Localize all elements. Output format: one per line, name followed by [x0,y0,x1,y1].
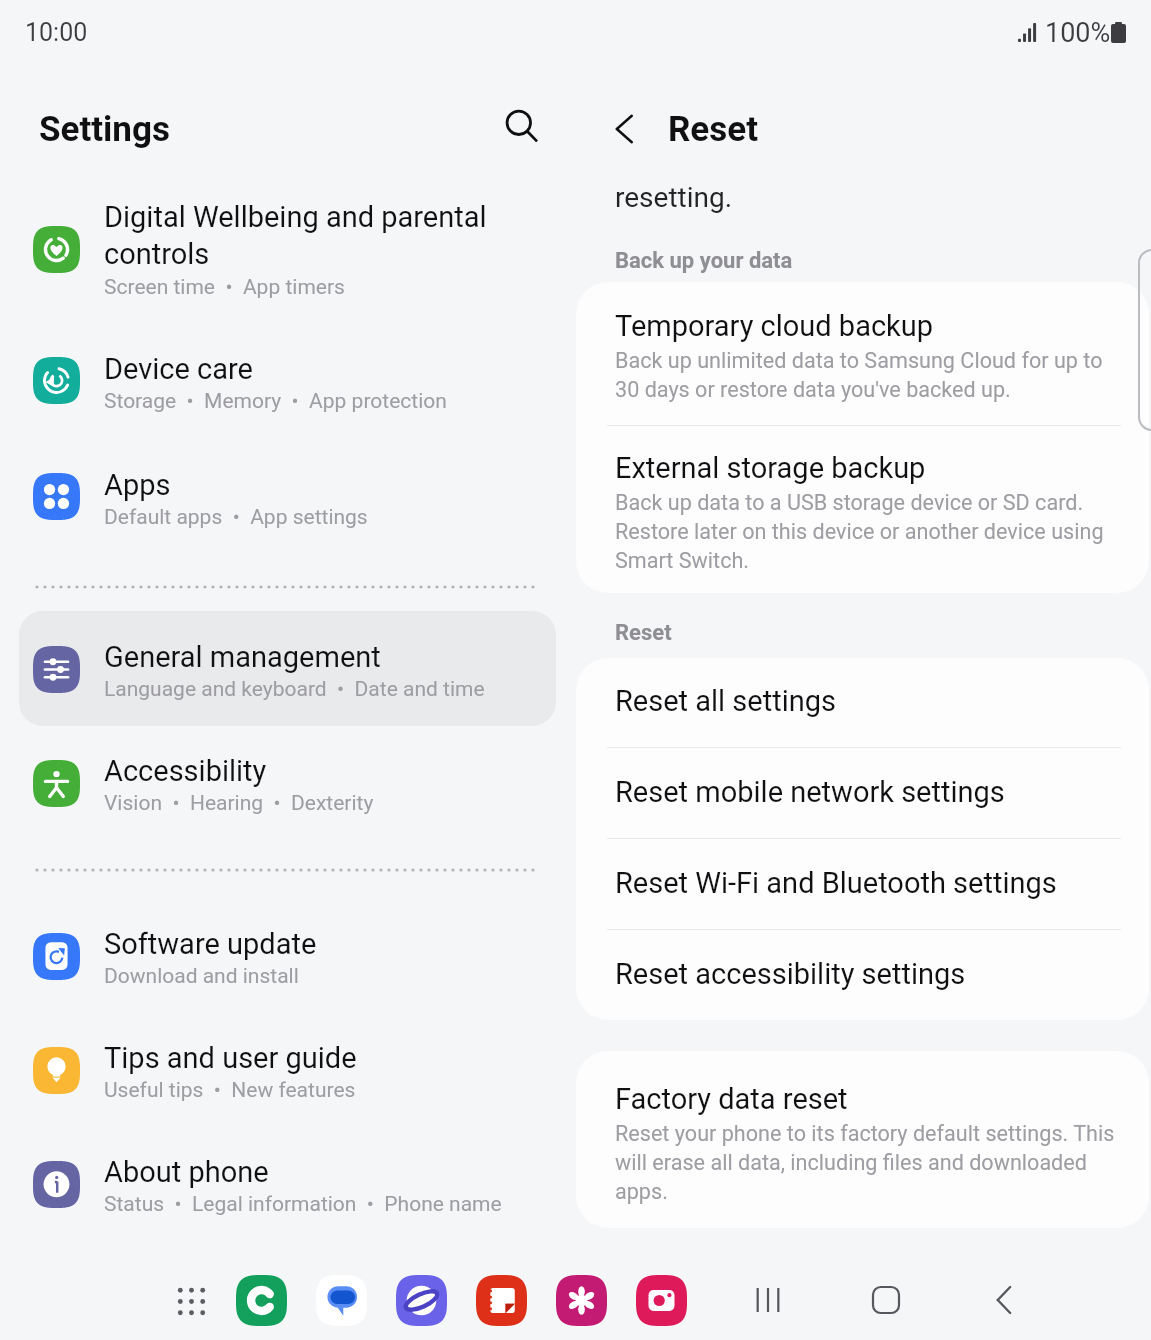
staticText: Storage • Memory • App protection [104,389,447,414]
staticText: Tips and user guide [104,1041,357,1075]
staticText: Reset [615,620,672,646]
button[interactable]: Camera [636,1275,687,1326]
button[interactable]: Digital Wellbeing and parental controls [19,192,556,326]
staticText: Language and keyboard • Date and time [104,677,485,702]
button[interactable]: Reset all settings [576,658,1149,749]
button[interactable]: Reset mobile network settings [576,749,1149,840]
button[interactable]: Recents [732,1264,804,1336]
button[interactable]: Accessibility [19,747,556,862]
button[interactable]: External storage backup [576,426,1149,593]
button[interactable]: Device care [19,344,556,459]
button[interactable]: Reset Wi-Fi and Bluetooth settings [576,840,1149,931]
staticText: Accessibility [104,754,267,788]
staticText: Reset [668,109,759,150]
button[interactable]: About phone [19,1148,556,1263]
button[interactable]: Temporary cloud backup [576,282,1149,425]
button[interactable]: Messages [316,1275,367,1326]
staticText: Back up data to a USB storage device or … [615,490,1104,573]
staticText: Screen time • App timers [104,275,345,300]
staticText: 10:00 [25,18,88,47]
button[interactable]: Gallery [556,1275,607,1326]
button[interactable]: General management [19,611,556,726]
staticText: Reset Wi-Fi and Bluetooth settings [615,866,1057,900]
staticText: resetting. [615,181,733,214]
staticText: Software update [104,927,317,961]
button[interactable]: Back [969,1264,1041,1336]
staticText: Vision • Hearing • Dexterity [104,791,374,816]
staticText: Reset mobile network settings [615,775,1005,809]
button[interactable]: Factory data reset [576,1051,1149,1228]
button[interactable]: Tips and user guide [19,1034,556,1149]
button[interactable]: Reset accessibility settings [576,931,1149,1022]
staticText: 100% [1045,17,1111,49]
button[interactable]: Phone [236,1275,287,1326]
button[interactable]: All apps [178,1288,205,1315]
staticText: Back up your data [615,248,793,274]
staticText: External storage backup [615,451,926,485]
staticText: Download and install [104,964,299,989]
staticText: General management [104,640,381,674]
button[interactable]: Notes [476,1275,527,1326]
staticText: Default apps • App settings [104,505,368,530]
button[interactable]: Back [600,104,650,154]
button[interactable]: Apps [19,460,556,575]
staticText: Reset your phone to its factory default … [615,1121,1115,1204]
staticText: Reset accessibility settings [615,957,966,991]
staticText: Temporary cloud backup [615,309,934,343]
staticText: Digital Wellbeing and parental controls [104,200,487,271]
staticText: Reset all settings [615,684,836,718]
staticText: Useful tips • New features [104,1078,356,1103]
button[interactable]: Home [850,1264,922,1336]
staticText: Back up unlimited data to Samsung Cloud … [615,348,1103,402]
button[interactable]: Internet [396,1275,447,1326]
staticText: Apps [104,468,171,502]
staticText: Device care [104,352,253,386]
button[interactable]: Search [496,101,546,151]
staticText: About phone [104,1155,269,1189]
staticText: Settings [39,109,170,150]
button[interactable]: Software update [19,920,556,1035]
staticText: Factory data reset [615,1082,848,1116]
staticText: Status • Legal information • Phone name [104,1192,502,1217]
